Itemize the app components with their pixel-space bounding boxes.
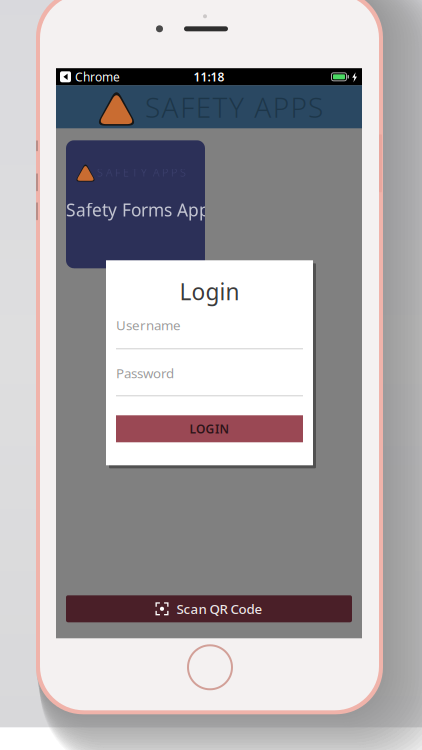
staticText: Login xyxy=(179,276,239,306)
staticText: SAFETY APPS xyxy=(145,88,323,125)
staticText: LOGIN xyxy=(189,421,229,437)
staticText: Chrome xyxy=(75,69,120,85)
staticText: Username xyxy=(116,316,181,334)
staticText: Safety Forms App xyxy=(66,198,210,221)
staticText: Scan QR Code xyxy=(176,600,262,618)
staticText: S A F E T Y A P P S xyxy=(97,165,186,179)
button[interactable]: Chrome xyxy=(56,69,120,85)
staticText: 11:18 xyxy=(193,69,224,85)
button[interactable]: Scan QR Code xyxy=(66,595,352,622)
staticText: Password xyxy=(116,364,174,382)
button[interactable]: LOGIN xyxy=(116,415,303,442)
